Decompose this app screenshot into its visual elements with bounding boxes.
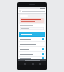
button[interactable] (20, 18, 44, 23)
button[interactable]: Toggle option (19, 37, 45, 41)
button[interactable] (19, 32, 45, 36)
button[interactable]: Toggle option (42, 53, 44, 55)
button[interactable]: Toggle option (19, 47, 45, 51)
button[interactable]: Menu (18, 9, 46, 13)
button[interactable]: Home (31, 62, 34, 65)
button[interactable]: Recents (38, 62, 41, 65)
button[interactable] (19, 42, 45, 46)
button[interactable]: Toggle option (42, 57, 44, 59)
button[interactable]: Toggle option (42, 48, 44, 50)
button[interactable]: Toggle option (42, 38, 44, 40)
button[interactable]: Toggle option (19, 52, 45, 56)
button[interactable]: Toggle option (19, 57, 45, 59)
button[interactable] (20, 27, 44, 30)
button[interactable]: Back (23, 62, 26, 65)
